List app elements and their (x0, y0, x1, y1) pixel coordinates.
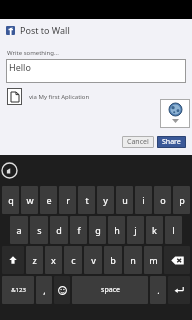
button[interactable]: k (146, 216, 163, 244)
button[interactable]: Share (157, 136, 186, 148)
staticText: q (8, 194, 14, 206)
button[interactable]: o (154, 186, 171, 214)
staticText: s (37, 224, 42, 236)
button[interactable]: Cancel (122, 136, 154, 148)
button[interactable]: g (89, 216, 106, 244)
staticText: i (142, 194, 145, 206)
button[interactable]: u (116, 186, 133, 214)
button[interactable]: t (78, 186, 95, 214)
button[interactable]: . (150, 276, 166, 304)
staticText: c (71, 254, 76, 266)
staticText: b (110, 254, 116, 266)
button[interactable]: c (64, 246, 82, 274)
staticText: m (149, 254, 158, 266)
staticText: p (179, 194, 185, 206)
button[interactable]: v (84, 246, 102, 274)
staticText: u (122, 194, 128, 206)
staticText: l (172, 224, 175, 236)
staticText: space (101, 285, 120, 295)
staticText: &123 (11, 286, 26, 294)
button[interactable]: f (70, 216, 87, 244)
button[interactable]: x (45, 246, 62, 274)
staticText: x (51, 254, 56, 266)
button[interactable]: Emoji (54, 276, 70, 304)
staticText: Cancel (127, 137, 149, 147)
button[interactable]: Attachment (7, 88, 22, 105)
button[interactable]: m (144, 246, 162, 274)
button[interactable]: j (127, 216, 144, 244)
button[interactable]: h (108, 216, 125, 244)
staticText: Post to Wall (20, 24, 70, 36)
staticText: g (95, 224, 101, 236)
button[interactable]: b (104, 246, 122, 274)
staticText: r (66, 194, 70, 206)
button[interactable]: a (10, 216, 28, 244)
staticText: y (103, 194, 108, 206)
button[interactable]: s (30, 216, 48, 244)
button[interactable]: y (97, 186, 114, 214)
staticText: via My first Aplication (29, 93, 90, 101)
button[interactable]: , (36, 276, 52, 304)
staticText: h (114, 224, 120, 236)
staticText: z (32, 254, 37, 266)
button[interactable]: Facebook (0, 24, 192, 36)
button[interactable]: Voice input (1, 162, 18, 179)
button[interactable]: Shift (2, 246, 24, 274)
staticText: j (134, 224, 137, 236)
staticText: w (26, 194, 34, 206)
staticText: Write something... (7, 49, 59, 57)
other: Facebook (6, 26, 15, 35)
staticText: a (16, 224, 22, 236)
button[interactable]: l (165, 216, 182, 244)
button[interactable]: n (124, 246, 142, 274)
button[interactable]: Backspace (164, 246, 190, 274)
staticText: Hello (9, 61, 31, 73)
staticText: v (91, 254, 96, 266)
button[interactable]: q (2, 186, 19, 214)
button[interactable]: i (135, 186, 152, 214)
staticText: Share (162, 137, 181, 147)
button[interactable]: Privacy: Public (160, 99, 190, 128)
button[interactable]: &123 (2, 276, 34, 304)
button[interactable]: p (173, 186, 190, 214)
staticText: d (56, 224, 62, 236)
button[interactable]: Enter (168, 276, 190, 304)
staticText: o (160, 194, 166, 206)
staticText: k (152, 224, 157, 236)
staticText: . (157, 284, 160, 296)
button[interactable]: d (50, 216, 68, 244)
staticText: , (43, 284, 46, 296)
staticText: t (85, 194, 89, 206)
button[interactable]: space (72, 276, 148, 304)
button[interactable]: e (40, 186, 57, 214)
button[interactable]: Hello (6, 59, 186, 83)
button[interactable]: z (26, 246, 43, 274)
button[interactable]: w (21, 186, 38, 214)
staticText: n (130, 254, 136, 266)
button[interactable]: r (59, 186, 76, 214)
staticText: e (46, 194, 52, 206)
staticText: f (77, 224, 81, 236)
